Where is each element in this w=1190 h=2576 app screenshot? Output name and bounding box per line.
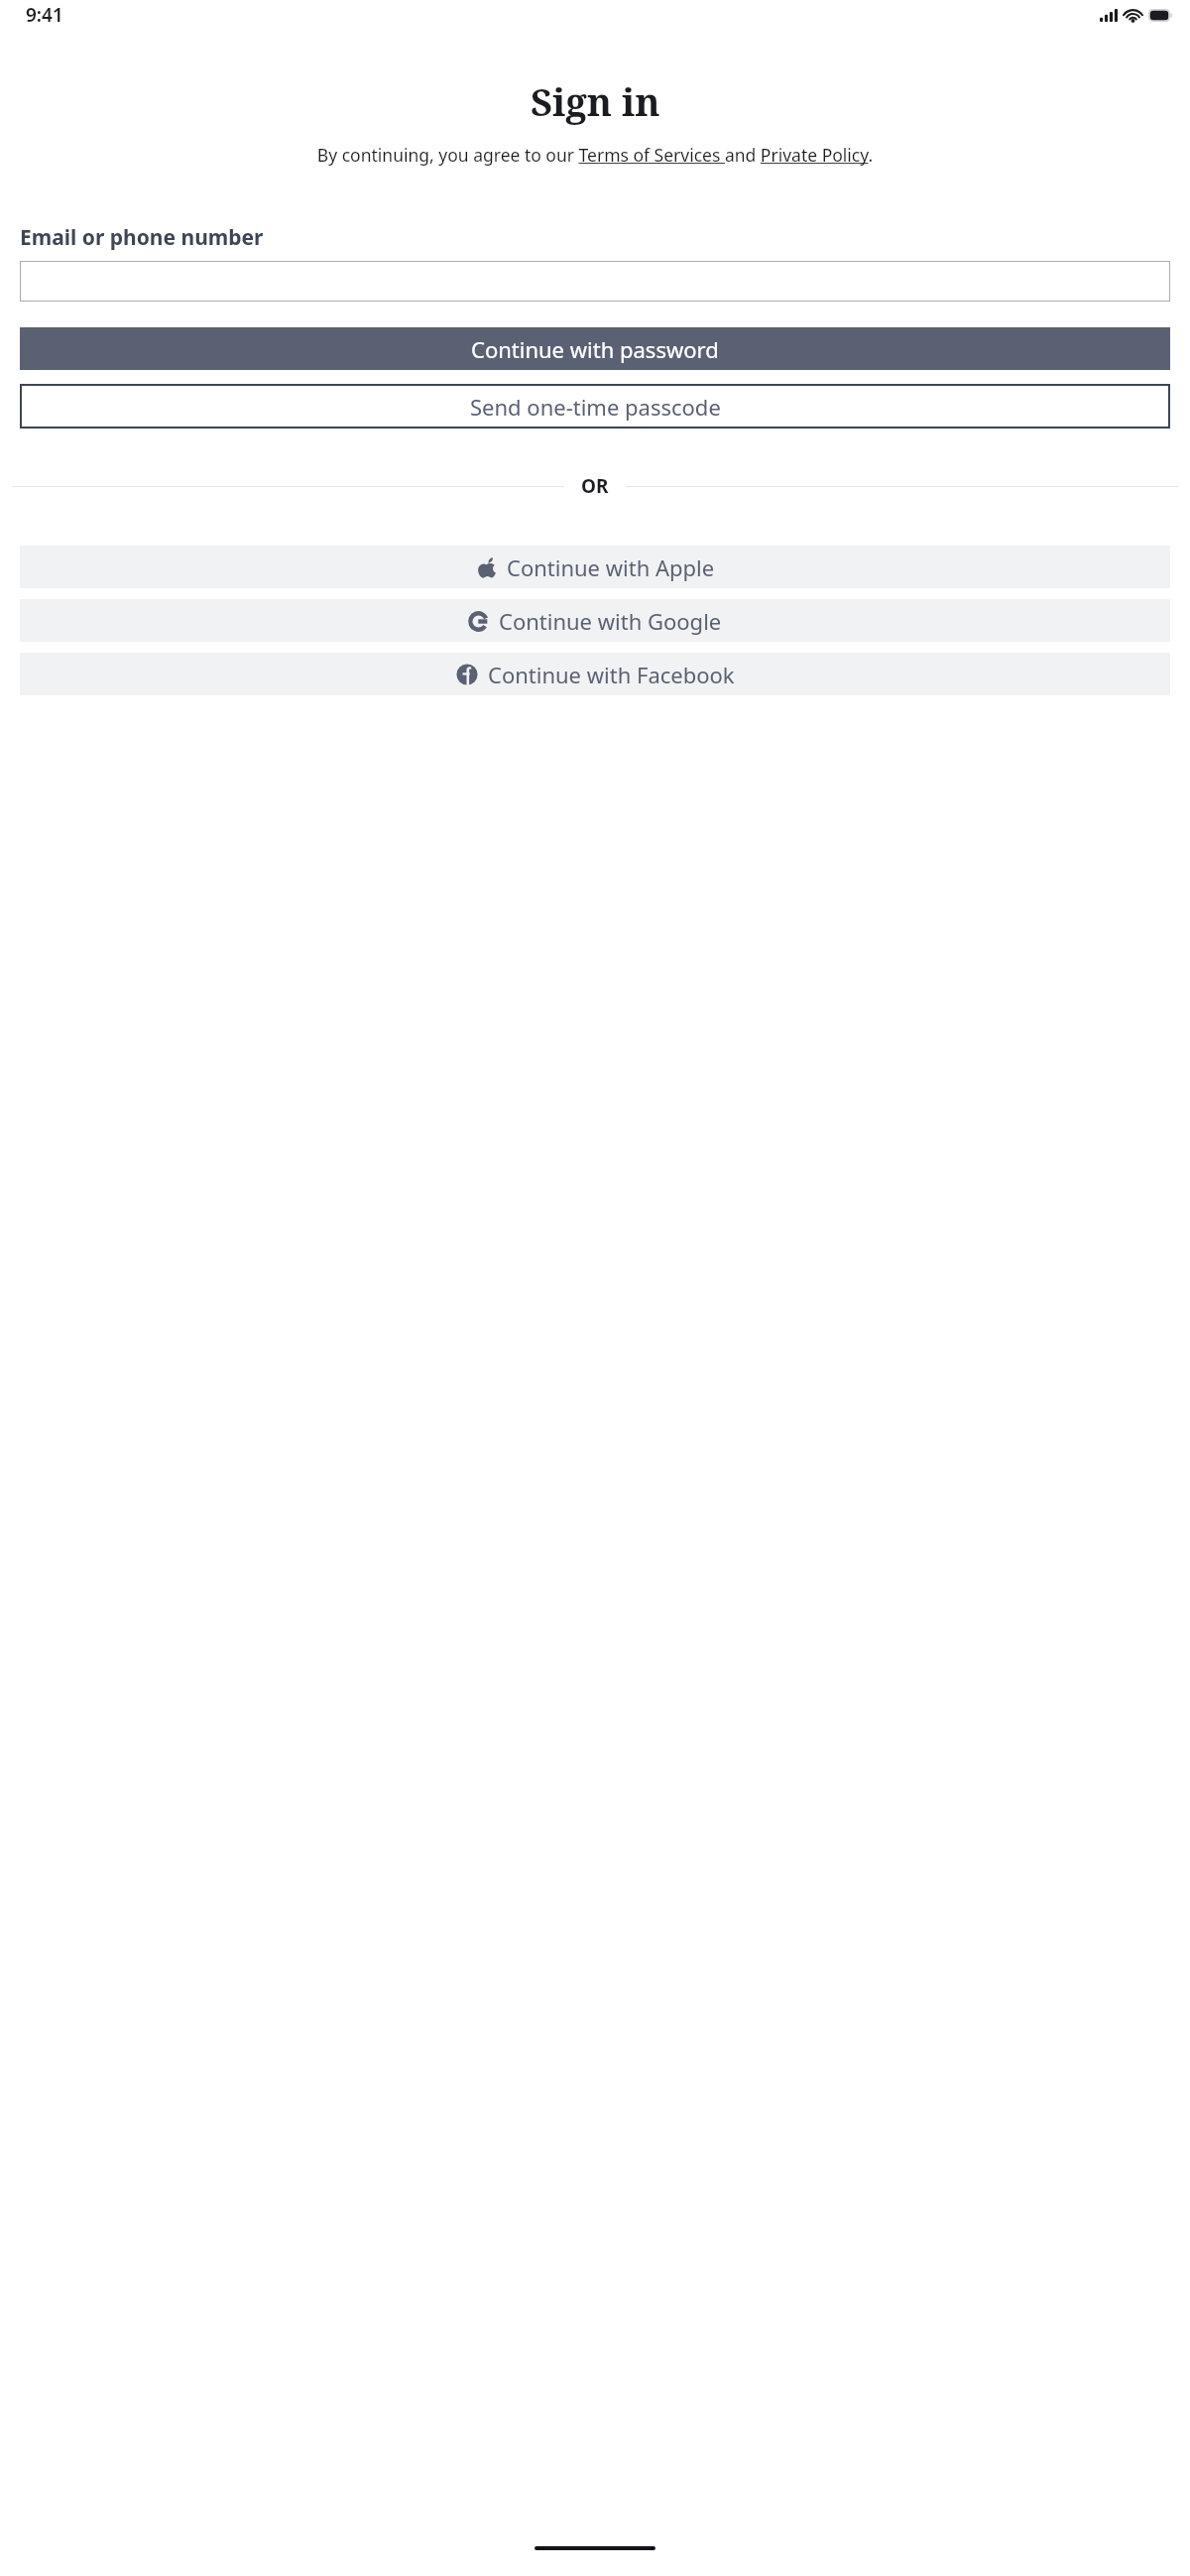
staticText: Continue with Facebook	[488, 660, 735, 689]
staticText: Send one-time passcode	[470, 392, 721, 422]
staticText: Continue with Google	[499, 606, 722, 636]
staticText: OR	[581, 473, 609, 499]
button[interactable]: Continue with Facebook	[20, 653, 1170, 695]
button[interactable]: Continue with password	[20, 327, 1170, 370]
staticText: 9:41	[26, 2, 63, 28]
staticText: Continue with password	[471, 334, 719, 364]
button[interactable]: Email or phone number input	[20, 261, 1170, 302]
staticText: Continue with Apple	[507, 552, 715, 582]
staticText: Email or phone number	[20, 223, 264, 252]
button[interactable]: Continue with Google	[20, 599, 1170, 642]
button[interactable]: Send one-time passcode	[20, 384, 1170, 429]
button[interactable]: Continue with Apple	[20, 546, 1170, 588]
staticText: By continuing, you agree to our Terms of…	[20, 143, 1170, 167]
staticText: Sign in	[531, 75, 660, 127]
